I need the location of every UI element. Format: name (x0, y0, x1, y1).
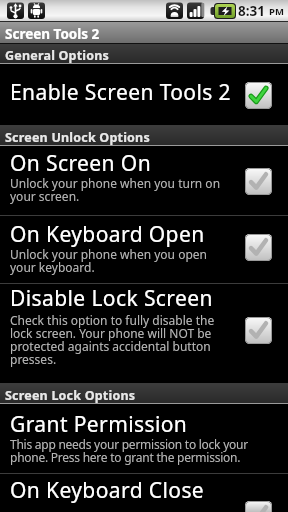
button[interactable]: Disable Lock Screen (0, 284, 288, 384)
button[interactable]: Enable Screen Tools 2 (0, 64, 288, 126)
staticText: This app needs your permission to lock y… (10, 436, 248, 466)
button[interactable]: Grant Permission (0, 404, 288, 474)
staticText: Screen Unlock Options (5, 129, 150, 146)
button[interactable]: On Keyboard Open (0, 216, 288, 284)
staticText: On Keyboard Close (10, 476, 205, 505)
staticText: On Screen On (10, 149, 152, 178)
button[interactable]: On Screen On (0, 146, 288, 216)
staticText: Screen Tools 2 (5, 25, 100, 43)
staticText: Enable Screen Tools 2 (10, 78, 232, 107)
button[interactable]: On Keyboard Close (0, 474, 288, 512)
staticText: General Options (5, 47, 110, 64)
staticText: Grant Permission (10, 410, 188, 439)
staticText: Screen Lock Options (5, 387, 136, 404)
staticText: 8:31 (238, 2, 269, 20)
staticText: Unlock your phone when you turn on your … (10, 175, 221, 205)
staticText: Check this option to fully disable the l… (10, 312, 215, 368)
staticText: On Keyboard Open (10, 220, 205, 249)
staticText: PM (269, 5, 284, 18)
staticText: Disable Lock Screen (10, 284, 213, 313)
staticText: Unlock your phone when you open your key… (10, 246, 207, 276)
